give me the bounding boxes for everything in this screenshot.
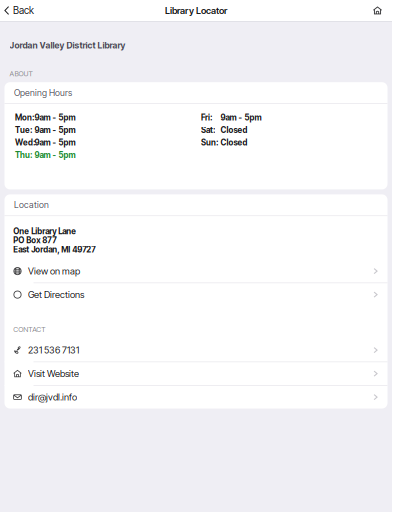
staticText: Sat: xyxy=(201,125,215,135)
staticText: Location xyxy=(14,200,49,210)
staticText: Closed xyxy=(221,138,248,147)
staticText: Back xyxy=(13,4,34,16)
staticText: Thu: xyxy=(15,150,32,160)
staticText: Jordan Valley District Library xyxy=(9,40,125,51)
staticText: Get Directions xyxy=(28,289,84,300)
staticText: 9am - 5pm xyxy=(221,113,262,122)
button[interactable]: Home xyxy=(365,0,392,21)
staticText: Fri: xyxy=(201,113,212,122)
staticText: 9am - 5pm xyxy=(35,125,76,135)
staticText: Opening Hours xyxy=(14,87,72,98)
staticText: Library Locator xyxy=(165,5,227,16)
staticText: One Library Lane xyxy=(13,226,76,236)
button[interactable]: 231 536 7131 xyxy=(4,339,387,361)
staticText: CONTACT xyxy=(13,325,45,334)
button[interactable]: Get Directions xyxy=(4,283,387,306)
button[interactable]: Back xyxy=(0,0,40,21)
staticText: 9am - 5pm xyxy=(35,150,76,160)
staticText: dir@jvdl.info xyxy=(28,391,77,403)
staticText: Sun: xyxy=(201,138,218,147)
staticText: Mon: xyxy=(15,113,34,122)
button[interactable]: Visit Website xyxy=(4,362,387,385)
staticText: View on map xyxy=(28,265,80,277)
staticText: Wed: xyxy=(15,138,35,147)
button[interactable]: View on map xyxy=(4,260,387,282)
staticText: 231 536 7131 xyxy=(28,344,79,356)
staticText: 9am - 5pm xyxy=(35,138,76,147)
staticText: Visit Website xyxy=(28,368,79,379)
staticText: East Jordan, MI 49727 xyxy=(13,245,95,254)
staticText: Tue: xyxy=(15,125,32,135)
staticText: ABOUT xyxy=(9,69,32,78)
staticText: 9am - 5pm xyxy=(35,113,76,122)
staticText: PO Box 877 xyxy=(13,235,56,245)
staticText: Closed xyxy=(221,125,248,135)
button[interactable]: dir@jvdl.info xyxy=(4,386,387,408)
